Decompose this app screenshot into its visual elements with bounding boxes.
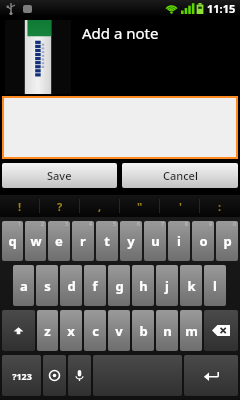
button[interactable]: w (25, 221, 46, 261)
staticText: ? (57, 199, 63, 214)
staticText: 3 (65, 221, 68, 228)
button[interactable]: f (84, 265, 106, 306)
button[interactable]: " (120, 195, 160, 217)
button[interactable]: Save (2, 163, 117, 188)
staticText: c (92, 322, 99, 340)
button[interactable]: Voice input (68, 355, 91, 396)
staticText: x (67, 322, 75, 340)
staticText: m (185, 322, 198, 340)
button[interactable]: g (108, 265, 130, 306)
button[interactable]: ' (160, 195, 200, 217)
button[interactable]: c (84, 310, 106, 351)
button[interactable]: n (156, 310, 178, 351)
button[interactable]: i (168, 221, 190, 261)
button[interactable]: j (156, 265, 178, 306)
button[interactable]: Photo thumbnail (5, 20, 71, 94)
button[interactable]: y (120, 221, 142, 261)
button[interactable]: s (36, 265, 58, 306)
staticText: w (30, 232, 42, 250)
staticText: ' (179, 199, 182, 214)
staticText: o (199, 232, 208, 250)
staticText: : (218, 199, 222, 214)
button[interactable]: ? (40, 195, 80, 217)
staticText: l (213, 277, 217, 295)
staticText: u (151, 232, 160, 250)
staticText: d (67, 277, 76, 295)
staticText: 6 (137, 221, 140, 228)
staticText: v (115, 322, 123, 340)
staticText: r (80, 232, 86, 250)
staticText: e (55, 232, 63, 250)
staticText: h (139, 277, 148, 295)
staticText: z (44, 322, 51, 340)
staticText: b (139, 322, 148, 340)
button[interactable]: v (108, 310, 130, 351)
button[interactable]: r (72, 221, 94, 261)
button[interactable]: z (37, 310, 58, 351)
button[interactable]: k (180, 265, 202, 306)
button[interactable]: q (2, 221, 23, 261)
button[interactable]: o (192, 221, 214, 261)
staticText: " (137, 199, 143, 214)
button[interactable]: Enter (184, 355, 238, 396)
staticText: ?123 (12, 370, 32, 382)
staticText: , (98, 199, 102, 214)
button[interactable]: a (13, 265, 34, 306)
button[interactable]: h (132, 265, 154, 306)
staticText: f (92, 277, 98, 295)
button[interactable]: p (216, 221, 238, 261)
staticText: 7 (161, 221, 164, 228)
button[interactable]: Settings (43, 355, 66, 396)
button[interactable]: Shift (2, 310, 35, 351)
button[interactable]: u (144, 221, 166, 261)
button[interactable]: : (200, 195, 240, 217)
button[interactable]: b (132, 310, 154, 351)
staticText: 5 (113, 221, 116, 228)
staticText: ! (18, 199, 22, 214)
button[interactable]: , (80, 195, 120, 217)
button[interactable]: Cancel (122, 163, 238, 188)
button[interactable]: d (60, 265, 82, 306)
staticText: s (44, 277, 51, 295)
staticText: 11:15 (207, 1, 236, 16)
button[interactable]: Backspace (204, 310, 238, 351)
staticText: Cancel (163, 168, 198, 183)
staticText: p (223, 232, 232, 250)
staticText: g (115, 277, 124, 295)
staticText: 2 (41, 221, 44, 228)
button[interactable]: l (204, 265, 226, 306)
staticText: Save (47, 168, 72, 183)
button[interactable]: e (48, 221, 70, 261)
staticText: 1 (18, 221, 21, 228)
button[interactable]: ! (0, 195, 40, 217)
staticText: y (127, 232, 135, 250)
staticText: Add a note (82, 23, 159, 43)
staticText: 9 (209, 221, 212, 228)
staticText: k (187, 277, 196, 295)
staticText: 8 (185, 221, 188, 228)
button[interactable]: ?123 (2, 355, 41, 396)
button[interactable]: Space (93, 355, 182, 396)
staticText: 4 (89, 221, 92, 228)
staticText: n (163, 322, 172, 340)
button[interactable]: t (96, 221, 118, 261)
staticText: a (20, 277, 28, 295)
staticText: t (104, 232, 110, 250)
button[interactable]: m (180, 310, 202, 351)
staticText: q (8, 232, 17, 250)
staticText: j (165, 277, 169, 295)
staticText: 0 (233, 221, 236, 228)
button[interactable]: x (60, 310, 82, 351)
staticText: i (177, 232, 181, 250)
